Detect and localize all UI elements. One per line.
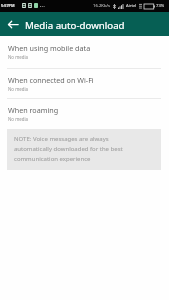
button[interactable]: When connected on Wi-Fi: [0, 69, 169, 98]
staticText: NOTE: Voice messages are always automati…: [14, 135, 134, 162]
staticText: 16.2Kb/s: [93, 3, 111, 9]
staticText: No media: [8, 116, 29, 122]
staticText: 73%: [156, 3, 165, 9]
staticText: No media: [8, 86, 29, 92]
staticText: Airtel: [126, 3, 137, 9]
staticText: When using mobile data: [8, 43, 91, 53]
staticText: Media auto-download: [25, 19, 125, 32]
staticText: 5:57PM: [1, 3, 15, 8]
button[interactable]: When roaming: [0, 99, 169, 129]
staticText: No media: [8, 54, 29, 60]
button[interactable]: Back: [0, 12, 24, 36]
button[interactable]: When using mobile data: [0, 36, 169, 68]
staticText: When roaming: [8, 105, 59, 115]
staticText: When connected on Wi-Fi: [8, 75, 94, 85]
